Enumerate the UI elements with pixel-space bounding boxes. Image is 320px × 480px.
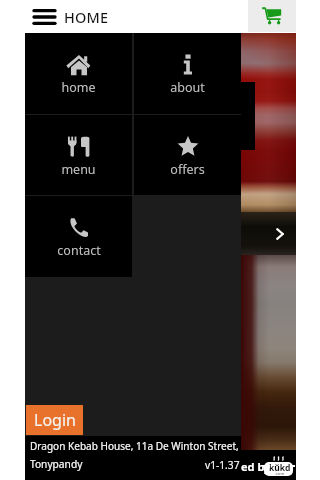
button[interactable]: about xyxy=(134,33,241,114)
button[interactable]: offers xyxy=(134,115,241,195)
button[interactable]: contact xyxy=(25,196,132,277)
staticText: v1-1.37 xyxy=(205,458,240,472)
staticText: Dragon Kebab House, 11a De Winton Street… xyxy=(30,439,239,453)
button[interactable]: Open navigation menu xyxy=(26,1,62,33)
staticText: kŭkd xyxy=(269,462,291,474)
button[interactable]: Next image xyxy=(264,218,296,250)
staticText: HOME xyxy=(64,7,109,27)
staticText: offers xyxy=(170,161,205,178)
button[interactable]: home xyxy=(25,33,132,114)
staticText: Tonypandy xyxy=(30,457,83,471)
staticText: menu xyxy=(61,161,96,178)
staticText: contact xyxy=(57,242,101,259)
staticText: ed by xyxy=(241,459,271,474)
button[interactable]: menu xyxy=(25,115,132,195)
staticText: about xyxy=(170,79,205,96)
button[interactable]: Login xyxy=(26,405,83,435)
button[interactable]: Basket xyxy=(248,0,296,32)
staticText: .com xyxy=(275,471,285,476)
staticText: home xyxy=(61,79,96,96)
staticText: Login xyxy=(34,409,76,431)
